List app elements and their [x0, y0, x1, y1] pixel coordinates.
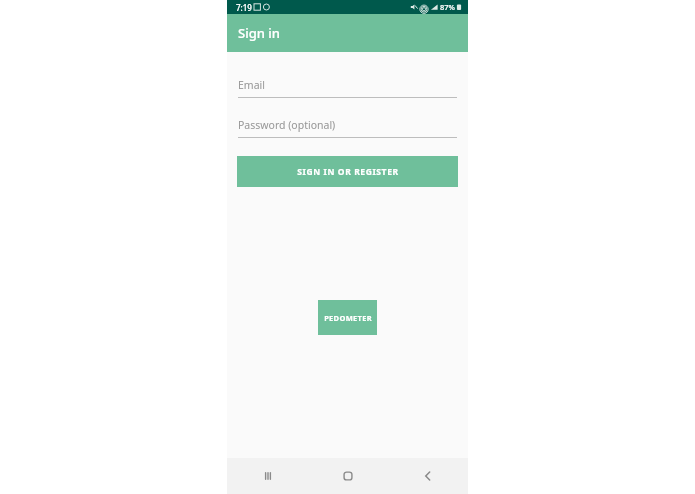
staticText: SIGN IN OR REGISTER: [297, 166, 399, 178]
button[interactable]: Recent apps: [227, 458, 308, 494]
staticText: 87%: [440, 2, 455, 12]
button[interactable]: Home: [308, 458, 388, 494]
button[interactable]: PEDOMETER: [318, 300, 377, 335]
staticText: Password (optional): [238, 118, 336, 132]
staticText: Sign in: [238, 24, 280, 42]
staticText: Email: [238, 78, 265, 92]
staticText: PEDOMETER: [324, 313, 372, 323]
button[interactable]: Back: [388, 458, 468, 494]
staticText: 7:19: [236, 2, 252, 13]
button[interactable]: Email: [238, 78, 457, 98]
button[interactable]: Password (optional): [238, 118, 457, 138]
button[interactable]: SIGN IN OR REGISTER: [237, 156, 458, 187]
